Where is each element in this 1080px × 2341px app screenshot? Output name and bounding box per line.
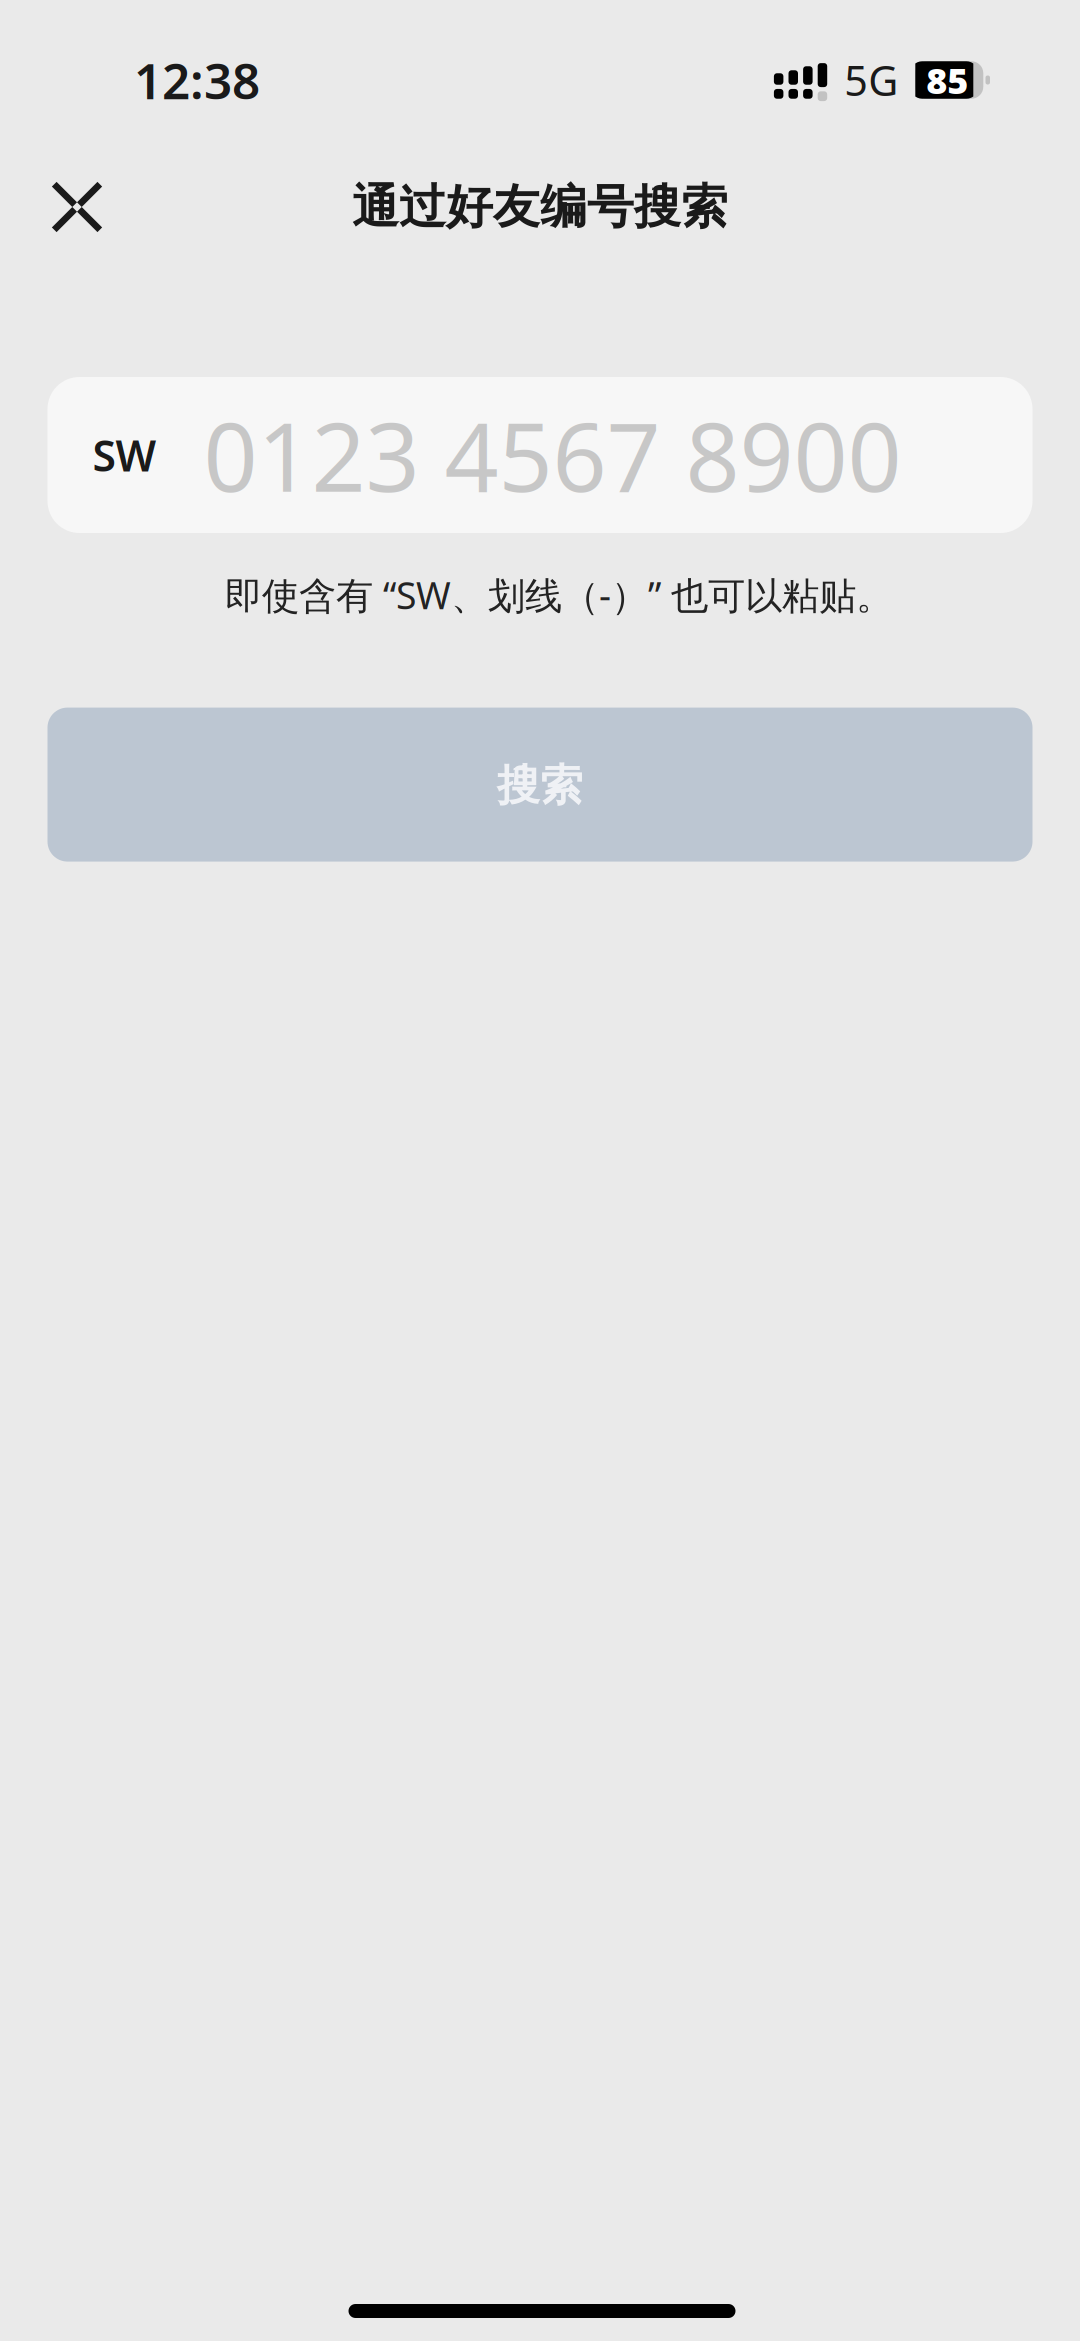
staticText: 5G xyxy=(844,53,898,107)
button[interactable]: SW xyxy=(47,377,1032,533)
button[interactable]: Close xyxy=(31,161,123,253)
staticText: 85 xyxy=(926,56,968,104)
button[interactable]: 搜索 xyxy=(47,708,1032,862)
staticText: 12:38 xyxy=(134,47,260,113)
staticText: SW xyxy=(92,427,156,483)
staticText: 搜索 xyxy=(497,759,583,812)
staticText: 0123 4567 8900 xyxy=(203,392,901,518)
staticText: 通过好友编号搜索 xyxy=(352,178,728,236)
staticText: 即使含有 “SW、划线（-）” 也可以粘贴。 xyxy=(225,570,893,620)
